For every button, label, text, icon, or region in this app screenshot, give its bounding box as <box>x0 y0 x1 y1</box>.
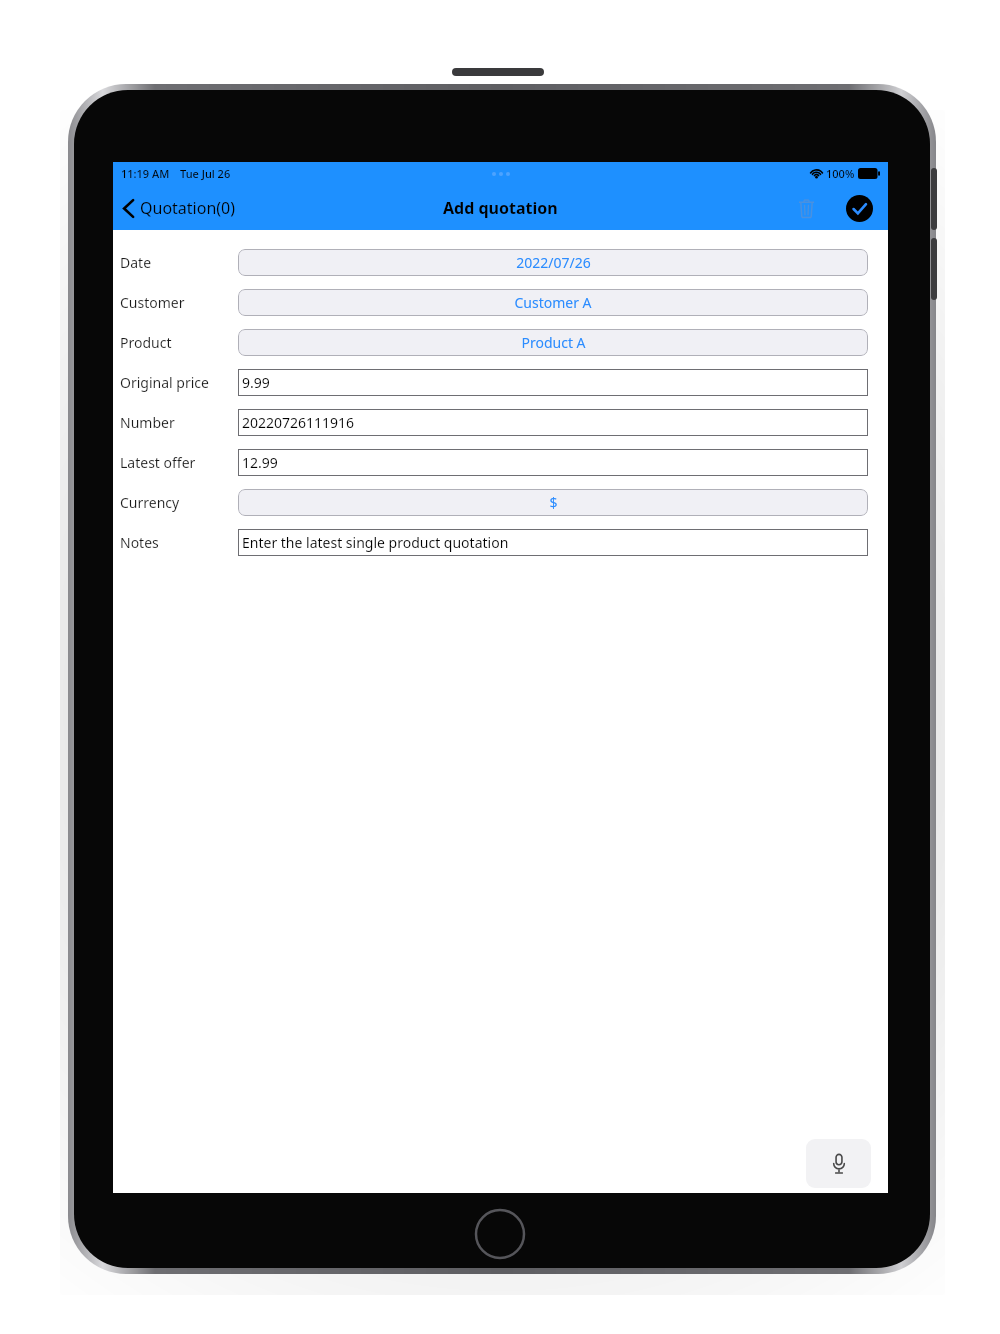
button[interactable]: Quotation(0) <box>113 191 246 225</box>
button[interactable]: Save <box>844 193 874 223</box>
staticText: 20220726111916 <box>242 413 355 432</box>
button[interactable]: Product A <box>238 329 868 356</box>
staticText: Enter the latest single product quotatio… <box>242 533 509 552</box>
button[interactable]: Enter the latest single product quotatio… <box>238 529 868 556</box>
button[interactable]: Home <box>474 1208 526 1260</box>
staticText: Customer A <box>514 293 592 312</box>
staticText: Date <box>120 253 238 272</box>
staticText: Currency <box>120 493 238 512</box>
staticText: Latest offer <box>120 453 238 472</box>
staticText: Customer <box>120 293 238 312</box>
staticText: Add quotation <box>443 197 558 219</box>
button[interactable]: Delete <box>790 192 822 224</box>
staticText: 2022/07/26 <box>516 253 591 272</box>
button[interactable]: 20220726111916 <box>238 409 868 436</box>
staticText: Quotation(0) <box>140 197 236 219</box>
staticText: Original price <box>120 373 238 392</box>
staticText: 100% <box>826 166 855 181</box>
staticText: 9.99 <box>242 373 270 392</box>
staticText: Tue Jul 26 <box>180 166 231 181</box>
staticText: Product A <box>521 333 586 352</box>
staticText: $ <box>549 493 558 512</box>
staticText: 12.99 <box>242 453 278 472</box>
button[interactable]: Voice input <box>806 1139 871 1188</box>
button[interactable]: Customer A <box>238 289 868 316</box>
button[interactable]: 2022/07/26 <box>238 249 868 276</box>
button[interactable]: $ <box>238 489 868 516</box>
staticText: Notes <box>120 533 238 552</box>
button[interactable]: 12.99 <box>238 449 868 476</box>
staticText: Number <box>120 413 238 432</box>
staticText: Product <box>120 333 238 352</box>
button[interactable]: 9.99 <box>238 369 868 396</box>
staticText: 11:19 AM <box>121 166 170 181</box>
